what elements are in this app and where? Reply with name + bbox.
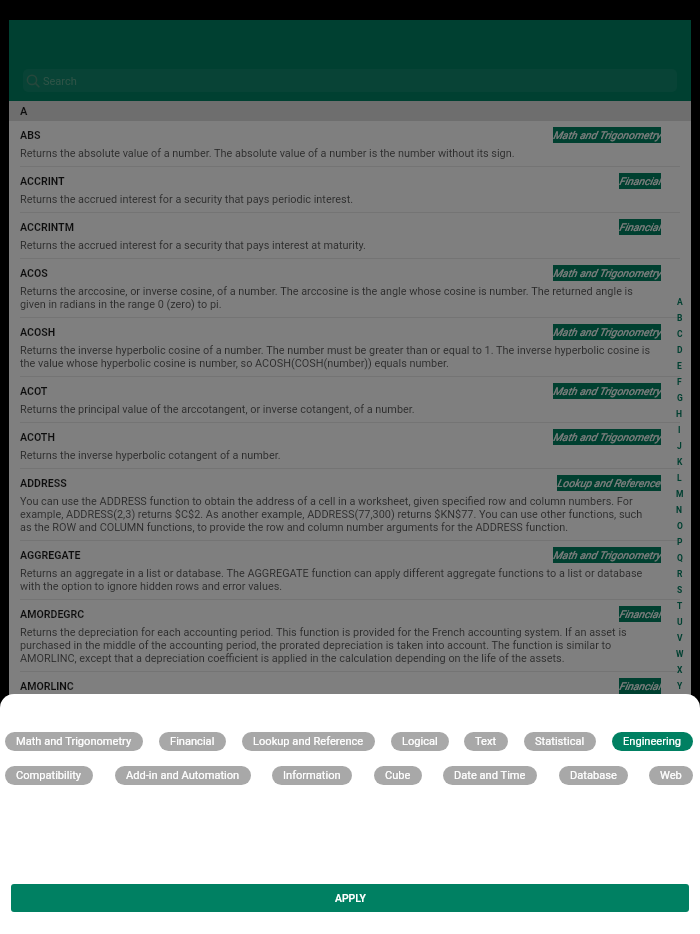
staticText: Returns the inverse hyperbolic cotangent… xyxy=(20,449,281,462)
staticText: Lookup and Reference xyxy=(253,735,364,748)
staticText: ADDRESS xyxy=(20,477,67,489)
staticText: B xyxy=(677,313,683,323)
button[interactable]: Information xyxy=(272,766,352,785)
staticText: R xyxy=(677,569,683,579)
staticText: Math and Trigonometry xyxy=(553,549,661,562)
button[interactable]: AMORLINC xyxy=(9,672,691,718)
staticText: C xyxy=(677,329,683,339)
staticText: Returns the accrued interest for a secur… xyxy=(20,193,354,206)
staticText: W xyxy=(676,649,684,659)
staticText: Statistical xyxy=(535,735,585,748)
staticText: Math and Trigonometry xyxy=(553,385,661,398)
staticText: Financial xyxy=(619,608,661,621)
staticText: E xyxy=(677,361,682,371)
staticText: N xyxy=(676,505,683,515)
staticText: Returns the inverse hyperbolic cosine of… xyxy=(20,344,655,370)
button[interactable]: ACOT xyxy=(9,377,691,423)
staticText: ACOTH xyxy=(20,431,55,443)
staticText: Add-in and Automation xyxy=(126,769,240,782)
staticText: T xyxy=(677,601,683,611)
staticText: I xyxy=(678,425,681,435)
staticText: Text xyxy=(475,735,497,748)
staticText: O xyxy=(677,521,683,531)
staticText: H xyxy=(676,409,683,419)
staticText: D xyxy=(677,345,683,355)
staticText: Lookup and Reference xyxy=(557,477,661,490)
staticText: F xyxy=(677,377,682,387)
staticText: Math and Trigonometry xyxy=(553,129,661,142)
staticText: M xyxy=(676,489,684,499)
staticText: Returns the arccosine, or inverse cosine… xyxy=(20,285,655,311)
staticText: Engineering xyxy=(623,735,682,748)
button[interactable]: ACOS xyxy=(9,259,691,318)
button[interactable]: Date and Time xyxy=(443,766,537,785)
staticText: Q xyxy=(677,553,683,563)
staticText: Compatibility xyxy=(16,769,82,782)
staticText: AGGREGATE xyxy=(20,549,81,561)
button[interactable]: Web xyxy=(649,766,693,785)
staticText: X xyxy=(677,665,683,675)
staticText: Database xyxy=(570,769,617,782)
button[interactable]: ABS xyxy=(9,121,691,167)
staticText: Y xyxy=(677,681,683,691)
staticText: Math and Trigonometry xyxy=(16,735,132,748)
staticText: APPLY xyxy=(335,892,366,904)
button[interactable]: Add-in and Automation xyxy=(115,766,251,785)
staticText: ACCRINTM xyxy=(20,221,74,233)
staticText: Cube xyxy=(385,769,411,782)
button[interactable]: Lookup and Reference xyxy=(242,732,375,751)
staticText: AMORDEGRC xyxy=(20,608,85,620)
staticText: A xyxy=(677,297,683,307)
staticText: Date and Time xyxy=(454,769,526,782)
button[interactable]: ACOTH xyxy=(9,423,691,469)
button[interactable]: ACCRINT xyxy=(9,167,691,213)
staticText: Financial xyxy=(619,680,661,693)
button[interactable]: ACCRINTM xyxy=(9,213,691,259)
staticText: Returns the accrued interest for a secur… xyxy=(20,239,366,252)
staticText: Financial xyxy=(619,175,661,188)
staticText: ABS xyxy=(20,129,41,141)
staticText: Math and Trigonometry xyxy=(553,431,661,444)
staticText: Math and Trigonometry xyxy=(553,267,661,280)
staticText: Returns the depreciation for each accoun… xyxy=(20,626,655,665)
button[interactable]: Financial xyxy=(159,732,226,751)
staticText: Math and Trigonometry xyxy=(553,326,661,339)
staticText: A xyxy=(20,105,28,118)
staticText: V xyxy=(677,633,683,643)
button[interactable]: Logical xyxy=(391,732,449,751)
staticText: K xyxy=(677,457,683,467)
staticText: P xyxy=(677,537,683,547)
staticText: S xyxy=(677,585,683,595)
button[interactable]: ADDRESS xyxy=(9,469,691,541)
button[interactable]: Cube xyxy=(374,766,422,785)
button[interactable]: Math and Trigonometry xyxy=(5,732,143,751)
button[interactable]: Engineering xyxy=(612,732,693,751)
button[interactable]: Text xyxy=(464,732,508,751)
staticText: Logical xyxy=(402,735,438,748)
button[interactable]: ACOSH xyxy=(9,318,691,377)
staticText: Returns the absolute value of a number. … xyxy=(20,147,515,160)
staticText: ACOSH xyxy=(20,326,56,338)
staticText: L xyxy=(677,473,682,483)
staticText: J xyxy=(677,441,682,451)
button[interactable]: Statistical xyxy=(524,732,596,751)
staticText: You can use the ADDRESS function to obta… xyxy=(20,495,655,534)
staticText: Information xyxy=(283,769,341,782)
staticText: Financial xyxy=(170,735,215,748)
staticText: Web xyxy=(660,769,682,782)
button[interactable]: Database xyxy=(559,766,628,785)
button[interactable]: AGGREGATE xyxy=(9,541,691,600)
staticText: Returns an aggregate in a list or databa… xyxy=(20,567,655,593)
button[interactable]: Compatibility xyxy=(5,766,93,785)
staticText: ACOS xyxy=(20,267,48,279)
staticText: Financial xyxy=(619,221,661,234)
staticText: U xyxy=(677,617,683,627)
staticText: G xyxy=(677,393,683,403)
button[interactable]: AMORDEGRC xyxy=(9,600,691,672)
staticText: AMORLINC xyxy=(20,680,74,692)
button[interactable]: APPLY xyxy=(11,884,689,912)
staticText: ACCRINT xyxy=(20,175,65,187)
